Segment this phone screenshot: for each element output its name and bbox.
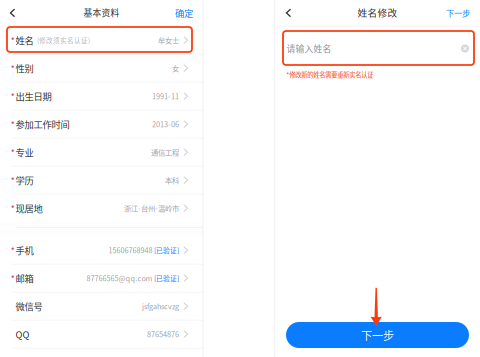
- staticText: 本科: [165, 175, 179, 185]
- staticText: (修改须实名认证): [37, 35, 90, 45]
- button[interactable]: 确定: [170, 1, 198, 25]
- staticText: 现居地: [15, 201, 42, 215]
- staticText: [已验证]: [154, 273, 179, 283]
- staticText: 专业: [15, 145, 33, 159]
- button[interactable]: 下一步: [442, 1, 474, 25]
- staticText: *修改新的姓名需要重新实名认证: [286, 70, 373, 79]
- button[interactable]: 下一步: [286, 322, 469, 348]
- staticText: 2013-06: [152, 119, 179, 129]
- staticText: 请输入姓名: [286, 42, 331, 55]
- staticText: 参加工作时间: [15, 117, 69, 131]
- button[interactable]: 出生日期: [0, 82, 203, 110]
- staticText: 87766565@qq.com: [87, 273, 153, 283]
- staticText: 手机: [15, 243, 33, 257]
- staticText: [已验证]: [154, 245, 179, 255]
- button[interactable]: 手机: [0, 236, 203, 264]
- staticText: 姓名: [15, 33, 33, 47]
- staticText: 确定: [175, 6, 193, 20]
- button[interactable]: 微信号: [0, 292, 203, 320]
- staticText: 1991-11: [152, 91, 179, 101]
- button[interactable]: Back: [1, 1, 23, 25]
- staticText: 学历: [15, 173, 33, 187]
- staticText: jsfgahscvzg: [142, 301, 179, 311]
- staticText: 87654876: [147, 329, 179, 339]
- button[interactable]: 专业: [0, 138, 203, 166]
- staticText: 微信号: [15, 299, 42, 313]
- button[interactable]: 学历: [0, 166, 203, 194]
- button[interactable]: 邮箱: [0, 264, 203, 292]
- button[interactable]: 性别: [0, 54, 203, 82]
- staticText: 通信工程: [151, 147, 179, 157]
- staticText: 邮箱: [15, 271, 33, 285]
- staticText: 15606768948: [109, 245, 153, 255]
- staticText: 下一步: [361, 327, 394, 343]
- button[interactable]: 姓名: [0, 26, 203, 54]
- staticText: QQ: [15, 327, 29, 341]
- button[interactable]: 现居地: [0, 194, 203, 222]
- staticText: 基本资料: [83, 6, 119, 19]
- staticText: 出生日期: [15, 89, 51, 103]
- button[interactable]: Back: [277, 1, 299, 25]
- staticText: 姓名修改: [357, 5, 397, 19]
- button[interactable]: 参加工作时间: [0, 110, 203, 138]
- staticText: 女: [172, 63, 179, 73]
- staticText: 牟女士: [158, 35, 179, 45]
- staticText: 浙江-台州-温岭市: [124, 203, 179, 213]
- button[interactable]: QQ: [0, 320, 203, 348]
- staticText: 下一步: [446, 7, 470, 19]
- staticText: 性别: [15, 61, 33, 75]
